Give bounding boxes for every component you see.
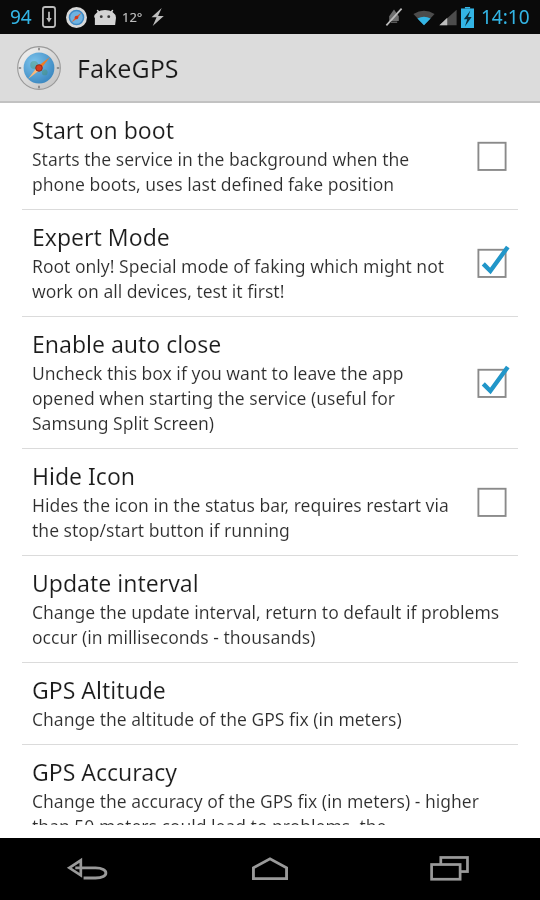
staticText: 94 bbox=[10, 4, 32, 30]
button[interactable]: Hide Icon bbox=[0, 449, 540, 555]
staticText: 12° bbox=[122, 8, 143, 26]
staticText: Update interval bbox=[32, 567, 199, 598]
staticText: 14:10 bbox=[481, 4, 530, 30]
button[interactable]: GPS Accuracy bbox=[0, 745, 540, 838]
staticText: GPS Altitude bbox=[32, 674, 166, 705]
staticText: Change the update interval, return to de… bbox=[32, 600, 520, 649]
staticText: Hide Icon bbox=[32, 460, 136, 491]
staticText: Expert Mode bbox=[32, 221, 170, 252]
staticText: Change the accuracy of the GPS fix (in m… bbox=[32, 789, 520, 825]
button[interactable]: Enable auto close bbox=[464, 354, 520, 410]
staticText: Enable auto close bbox=[32, 328, 222, 359]
button[interactable]: Expert Mode bbox=[0, 210, 540, 316]
button[interactable]: Start on boot bbox=[464, 127, 520, 183]
button[interactable]: Update interval bbox=[0, 556, 540, 662]
button[interactable]: Home bbox=[180, 838, 360, 900]
staticText: FakeGPS bbox=[77, 51, 179, 85]
button[interactable]: GPS Altitude bbox=[0, 663, 540, 744]
button[interactable]: Enable auto close bbox=[0, 317, 540, 448]
button[interactable]: Hide Icon bbox=[464, 473, 520, 529]
button[interactable]: Back bbox=[0, 838, 180, 900]
staticText: GPS Accuracy bbox=[32, 756, 177, 787]
staticText: Uncheck this box if you want to leave th… bbox=[32, 361, 454, 435]
button[interactable]: Expert Mode bbox=[464, 234, 520, 290]
staticText: Starts the service in the background whe… bbox=[32, 147, 454, 196]
button[interactable]: Start on boot bbox=[0, 103, 540, 209]
staticText: Start on boot bbox=[32, 114, 175, 145]
staticText: Root only! Special mode of faking which … bbox=[32, 254, 454, 303]
staticText: Change the altitude of the GPS fix (in m… bbox=[32, 707, 402, 731]
button[interactable]: Recent apps bbox=[360, 838, 540, 900]
staticText: Hides the icon in the status bar, requir… bbox=[32, 493, 454, 542]
